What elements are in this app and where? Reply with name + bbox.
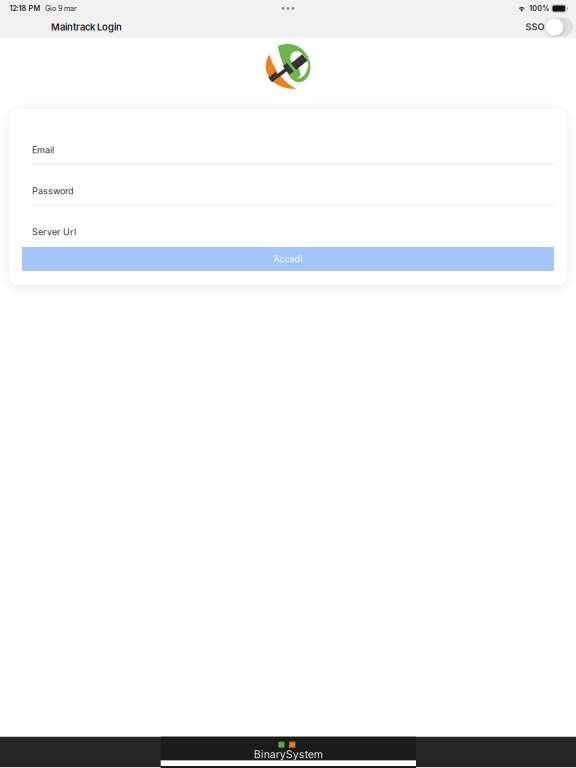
button[interactable]: Server Url [32, 218, 555, 245]
button[interactable]: SSO [525, 16, 573, 38]
button[interactable]: Accedi [22, 247, 554, 271]
staticText: BinarySystem [254, 748, 323, 761]
staticText: 100% [529, 4, 549, 13]
staticText: Password [32, 185, 74, 196]
button[interactable]: Maintrack Login [0, 18, 122, 36]
button[interactable]: Email [32, 136, 555, 164]
button[interactable]: Password [32, 177, 555, 205]
staticText: 12:18 PM [9, 4, 40, 13]
staticText: Accedi [273, 254, 302, 264]
staticText: Server Url [32, 226, 76, 237]
staticText: SSO [525, 21, 544, 32]
staticText: Email [32, 144, 54, 155]
staticText: Gio 9 mar [45, 4, 77, 13]
staticText: Maintrack Login [51, 21, 122, 33]
